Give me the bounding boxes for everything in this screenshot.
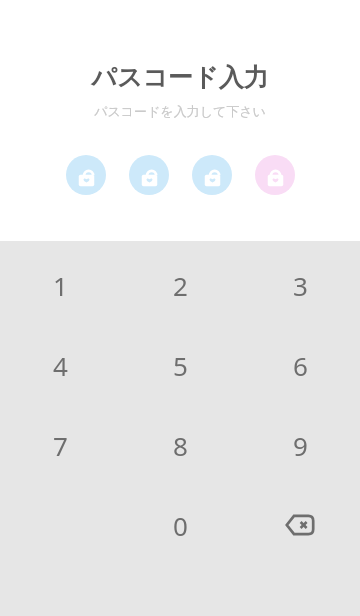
button[interactable]: 4 bbox=[0, 325, 120, 405]
button[interactable]: Passcode slot empty bbox=[129, 155, 169, 195]
staticText: 0 bbox=[173, 508, 188, 543]
staticText: 9 bbox=[293, 428, 308, 463]
staticText: パスコードを入力して下さい bbox=[0, 103, 360, 119]
staticText: 2 bbox=[173, 268, 188, 303]
button[interactable]: 0 bbox=[120, 485, 240, 565]
staticText: 8 bbox=[173, 428, 188, 463]
button[interactable]: 2 bbox=[120, 245, 240, 325]
staticText: 1 bbox=[53, 268, 68, 303]
staticText: 6 bbox=[293, 348, 308, 383]
staticText: 3 bbox=[293, 268, 308, 303]
button[interactable]: 6 bbox=[240, 325, 360, 405]
button[interactable]: 7 bbox=[0, 405, 120, 485]
staticText: 7 bbox=[53, 428, 68, 463]
button[interactable]: 8 bbox=[120, 405, 240, 485]
button[interactable]: 1 bbox=[0, 245, 120, 325]
staticText: パスコード入力 bbox=[0, 62, 360, 93]
button[interactable]: 3 bbox=[240, 245, 360, 325]
staticText: 4 bbox=[53, 348, 68, 383]
button[interactable]: 5 bbox=[120, 325, 240, 405]
button[interactable]: 9 bbox=[240, 405, 360, 485]
button[interactable]: Backspace bbox=[240, 485, 360, 565]
staticText: 5 bbox=[173, 348, 188, 383]
button[interactable]: Passcode slot filled bbox=[255, 155, 295, 195]
button[interactable]: Passcode slot empty bbox=[66, 155, 106, 195]
button[interactable]: Passcode slot empty bbox=[192, 155, 232, 195]
